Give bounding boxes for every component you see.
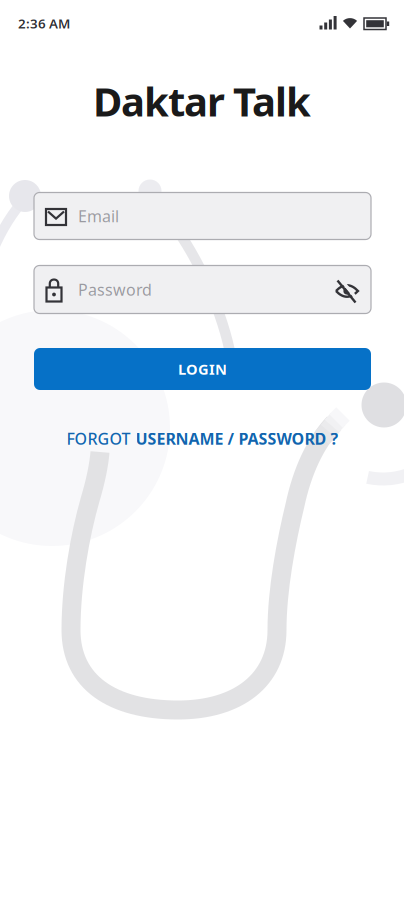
button[interactable]: Email (34, 192, 371, 239)
button[interactable]: Show password (327, 271, 367, 311)
staticText: Daktar Talk (93, 74, 311, 127)
staticText: LOGIN (178, 359, 227, 379)
button[interactable]: Password (34, 265, 371, 313)
staticText: FORGOT (66, 428, 130, 449)
staticText: USERNAME / PASSWORD ? (135, 428, 338, 449)
button[interactable]: LOGIN (34, 348, 371, 390)
staticText: Email (78, 205, 119, 227)
button[interactable]: FORGOT (66, 428, 338, 449)
staticText: Password (78, 279, 152, 300)
staticText: 2:36 AM (18, 14, 70, 32)
